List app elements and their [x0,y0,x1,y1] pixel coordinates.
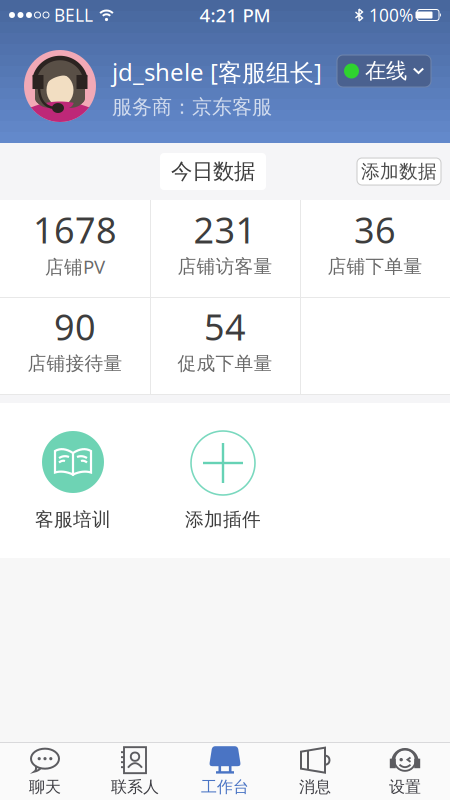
staticText: jd_shele [客服组长] [112,56,322,88]
button[interactable]: 聊天 [0,743,90,800]
staticText: 设置 [389,777,421,797]
staticText: 联系人 [111,777,159,797]
staticText: 54 [204,303,246,350]
staticText: 客服培训 [35,508,111,531]
button[interactable]: 设置 [360,743,450,800]
staticText: 店铺接待量 [27,352,122,375]
staticText: 店铺下单量 [327,255,422,278]
staticText: 服务商：京东客服 [112,95,272,119]
staticText: 促成下单量 [177,352,272,375]
button[interactable]: 工作台 [180,743,270,800]
staticText: 90 [54,303,96,350]
staticText: 1678 [33,206,117,253]
button[interactable]: 客服培训 [33,431,113,531]
staticText: 36 [354,206,396,253]
staticText: 4:21 PM [199,3,270,27]
button[interactable]: 在线 [337,55,431,87]
staticText: 231 [193,206,256,253]
staticText: 工作台 [201,777,249,797]
staticText: 聊天 [29,777,61,797]
button[interactable]: 联系人 [90,743,180,800]
button[interactable]: 今日数据 [160,153,266,190]
staticText: 在线 [365,58,407,84]
button[interactable]: 添加插件 [183,431,263,531]
staticText: 店铺PV [45,254,105,279]
staticText: 消息 [299,777,331,797]
staticText: 今日数据 [171,158,255,185]
staticText: 添加插件 [185,508,261,531]
staticText: 100% [369,3,413,26]
staticText: BELL [54,3,93,26]
staticText: 添加数据 [361,160,437,183]
button[interactable]: 添加数据 [357,158,441,185]
staticText: 店铺访客量 [177,255,272,278]
button[interactable]: 消息 [270,743,360,800]
